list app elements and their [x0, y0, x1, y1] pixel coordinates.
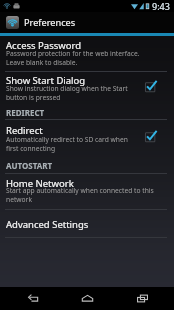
staticText: Automatically redirect to SD card when f… [6, 135, 128, 153]
staticText: REDIRECT [6, 107, 45, 118]
staticText: Start app automatically when connected t… [6, 186, 154, 204]
button[interactable]: Show Start Dialog [0, 72, 174, 102]
staticText: 9:43 [152, 0, 170, 12]
button[interactable]: Home [65, 287, 109, 310]
staticText: AUTOSTART [6, 160, 53, 171]
staticText: Show instruction dialog when the Start b… [6, 84, 128, 102]
staticText: Show Start Dialog [6, 74, 86, 87]
button[interactable]: Advanced Settings [0, 210, 174, 237]
staticText: Redirect [6, 124, 43, 137]
staticText: Preferences [24, 16, 76, 29]
button[interactable]: Home Network [0, 174, 174, 209]
staticText: Password protection for the web interfac… [6, 49, 140, 67]
staticText: Home Network [6, 177, 74, 190]
staticText: Advanced Settings [6, 218, 89, 231]
button[interactable]: Recent apps [120, 287, 164, 310]
button[interactable]: Back [11, 287, 55, 310]
button[interactable]: Redirect [0, 120, 174, 153]
button[interactable]: Access Password [0, 36, 174, 71]
staticText: Access Password [6, 39, 82, 52]
